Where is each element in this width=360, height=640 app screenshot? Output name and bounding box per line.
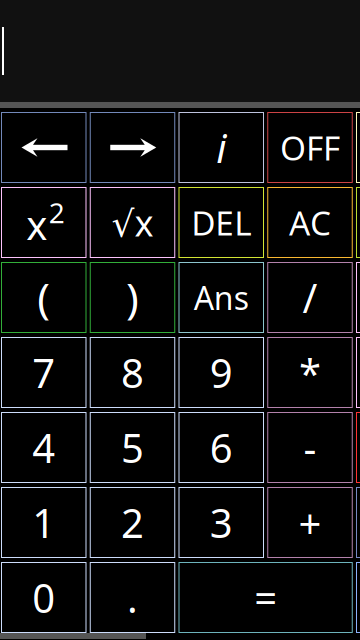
staticText: DEL [191,200,251,245]
button[interactable]: / [267,262,353,333]
button[interactable]: DEL [178,187,264,258]
staticText: 8 [121,346,144,399]
staticText: Ans [194,276,249,319]
button[interactable]: 6 [178,412,264,483]
staticText: 3 [210,496,233,549]
button[interactable]: i [178,112,264,183]
staticText: 2 [49,194,65,231]
button[interactable]: More keys [356,262,360,333]
button[interactable]: 1 [1,487,86,558]
button[interactable]: ) [90,262,175,333]
button[interactable]: Move cursor right [90,112,175,183]
button[interactable]: 9 [178,337,264,408]
button[interactable]: 2 [90,487,175,558]
button[interactable]: = [178,562,353,633]
staticText: - [303,421,316,474]
button[interactable]: More keys [356,187,360,258]
staticText: 5 [121,421,144,474]
staticText: 4 [32,421,55,474]
button[interactable]: * [267,337,353,408]
staticText: AC [289,200,331,245]
staticText: . [127,571,138,624]
button[interactable]: x [1,187,86,258]
button[interactable]: 7 [1,337,86,408]
button[interactable]: 3 [178,487,264,558]
staticText: / [302,271,317,324]
staticText: ( [37,269,50,326]
button[interactable]: 5 [90,412,175,483]
staticText: ) [126,269,139,326]
staticText: √x [111,199,153,246]
button[interactable]: More keys [356,487,360,558]
button[interactable]: AC [267,187,353,258]
button[interactable]: 0 [1,562,86,633]
staticText: * [299,346,321,399]
staticText: 1 [32,496,55,549]
button[interactable]: More keys [356,412,360,483]
staticText: = [254,571,277,624]
button[interactable]: + [267,487,353,558]
button[interactable]: 4 [1,412,86,483]
button[interactable]: . [90,562,175,633]
staticText: x [26,198,47,251]
staticText: 0 [32,571,55,624]
staticText: OFF [280,125,340,170]
staticText: 9 [210,346,233,399]
button[interactable]: - [267,412,353,483]
button[interactable]: 8 [90,337,175,408]
staticText: 2 [121,496,144,549]
button[interactable]: OFF [267,112,353,183]
button[interactable]: More keys [356,562,360,633]
button[interactable]: √x [90,187,175,258]
staticText: i [216,121,226,174]
button[interactable]: More keys [356,337,360,408]
staticText: 7 [32,346,55,399]
button[interactable]: More keys [356,112,360,183]
staticText: + [298,496,321,549]
button[interactable]: ( [1,262,86,333]
staticText: 6 [210,421,233,474]
button[interactable]: Move cursor left [1,112,86,183]
button[interactable]: Ans [178,262,264,333]
